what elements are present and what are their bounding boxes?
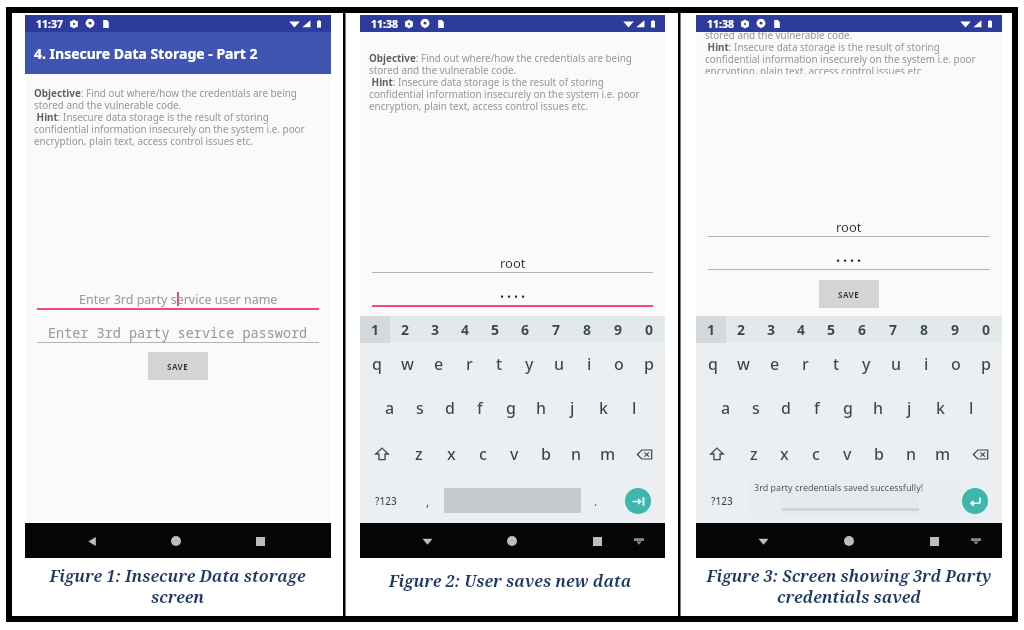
button[interactable]: p [971,343,1001,385]
button[interactable]: Home [836,528,862,554]
button[interactable]: . [581,478,611,523]
button[interactable]: ?123 [696,478,747,523]
button[interactable]: 3 [756,316,786,343]
button[interactable]: g [495,385,526,430]
button[interactable]: Change keyboard [630,532,648,550]
button[interactable]: Shift [696,430,738,478]
button[interactable]: • • • • [372,287,653,307]
button[interactable]: root [708,218,990,237]
button[interactable]: n [561,430,592,478]
button[interactable]: i [911,343,941,385]
button[interactable]: k [925,385,956,430]
button[interactable]: 7 [541,316,572,343]
button[interactable]: Hide keyboard [414,528,440,554]
button[interactable]: 8 [909,316,940,343]
button[interactable]: j [894,385,925,430]
button[interactable]: r [454,343,484,385]
button[interactable]: r [790,343,821,385]
button[interactable]: 7 [878,316,909,343]
button[interactable]: v [499,430,530,478]
button[interactable]: b [863,430,895,478]
button[interactable]: f [801,385,832,430]
button[interactable]: q [697,343,728,385]
button[interactable]: Next field [625,488,651,514]
button[interactable]: , [411,478,444,523]
button[interactable]: k [588,385,619,430]
button[interactable]: l [956,385,987,430]
button[interactable]: Recent apps [921,528,947,554]
button[interactable]: 1 [696,316,726,343]
button[interactable]: Recent apps [584,528,610,554]
button[interactable]: n [895,430,927,478]
button[interactable]: e [759,343,790,385]
button[interactable]: m [592,430,623,478]
button[interactable]: y [514,343,544,385]
button[interactable]: Hide keyboard [750,528,776,554]
button[interactable]: g [832,385,863,430]
button[interactable]: Backspace [623,430,665,478]
button[interactable]: p [634,343,664,385]
button[interactable]: Change keyboard [967,532,985,550]
button[interactable]: Recent apps [247,528,273,554]
button[interactable]: j [557,385,588,430]
button[interactable]: 9 [940,316,971,343]
button[interactable]: x [769,430,800,478]
button[interactable]: Backspace [959,430,1002,478]
button[interactable]: u [544,343,574,385]
button[interactable]: t [821,343,851,385]
button[interactable]: x [435,430,467,478]
button[interactable]: 6 [510,316,541,343]
button[interactable]: Shift [360,430,403,478]
button[interactable]: o [941,343,971,385]
button[interactable]: s [405,385,435,430]
button[interactable]: c [467,430,499,478]
button[interactable]: 4 [450,316,480,343]
button[interactable]: d [771,385,801,430]
button[interactable]: d [435,385,465,430]
button[interactable]: e [423,343,454,385]
button[interactable]: m [927,430,959,478]
button[interactable]: 9 [603,316,634,343]
button[interactable]: 2 [390,316,420,343]
button[interactable]: w [728,343,759,385]
button[interactable]: 5 [480,316,510,343]
button[interactable]: t [484,343,514,385]
button[interactable]: w [392,343,423,385]
button[interactable]: 0 [971,316,1002,343]
button[interactable]: q [361,343,392,385]
button[interactable]: h [526,385,557,430]
button[interactable]: z [403,430,435,478]
button[interactable]: 4 [786,316,816,343]
button[interactable]: Home [163,528,189,554]
button[interactable]: • • • • [708,251,990,270]
button[interactable]: 1 [360,316,390,343]
button[interactable]: o [604,343,634,385]
button[interactable]: Enter 3rd party service user name [37,290,319,310]
button[interactable]: Space [780,488,918,513]
button[interactable]: 8 [572,316,603,343]
button[interactable]: v [831,430,863,478]
button[interactable]: 3 [420,316,450,343]
button[interactable]: a [711,385,741,430]
button[interactable]: s [741,385,771,430]
button[interactable]: y [851,343,881,385]
button[interactable]: l [619,385,650,430]
button[interactable]: i [574,343,604,385]
button[interactable]: 6 [847,316,878,343]
button[interactable]: Home [499,528,525,554]
button[interactable]: u [881,343,911,385]
button[interactable]: Back [79,528,105,554]
button[interactable]: , [747,478,780,523]
button[interactable]: h [863,385,894,430]
button[interactable]: 0 [634,316,665,343]
button[interactable]: SAVE [819,280,879,308]
button[interactable]: . [918,478,948,523]
button[interactable]: c [800,430,831,478]
button[interactable]: 5 [816,316,847,343]
button[interactable]: SAVE [148,352,208,380]
button[interactable]: a [375,385,405,430]
button[interactable]: root [372,254,653,273]
button[interactable]: 2 [726,316,756,343]
button[interactable]: Enter [962,488,988,514]
